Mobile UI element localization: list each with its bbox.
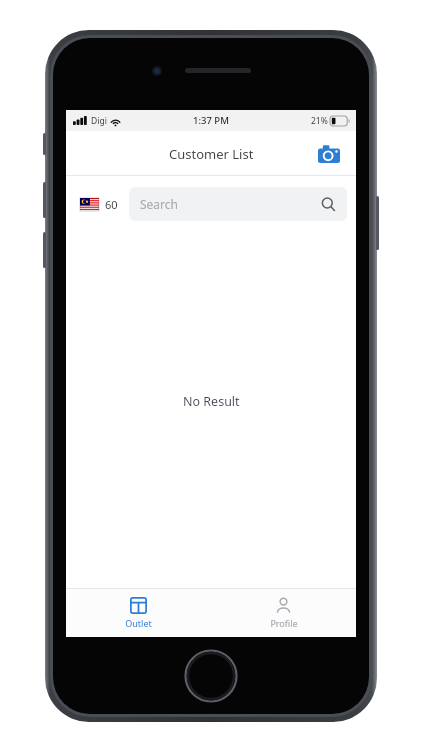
staticText: 60	[105, 197, 118, 212]
staticText: Outlet	[125, 617, 152, 629]
button[interactable]: Search	[129, 187, 347, 221]
button[interactable]: Profile	[211, 589, 356, 637]
button[interactable]: Open camera scanner	[314, 139, 344, 169]
staticText: No Result	[183, 393, 240, 410]
staticText: Digi	[91, 115, 107, 127]
button[interactable]: Outlet	[66, 589, 211, 637]
staticText: Search	[140, 196, 178, 212]
button[interactable]: 60	[78, 193, 120, 216]
staticText: 1:37 PM	[193, 114, 229, 127]
staticText: Profile	[270, 617, 298, 629]
staticText: 21%	[311, 115, 328, 127]
staticText: Customer List	[169, 145, 254, 163]
